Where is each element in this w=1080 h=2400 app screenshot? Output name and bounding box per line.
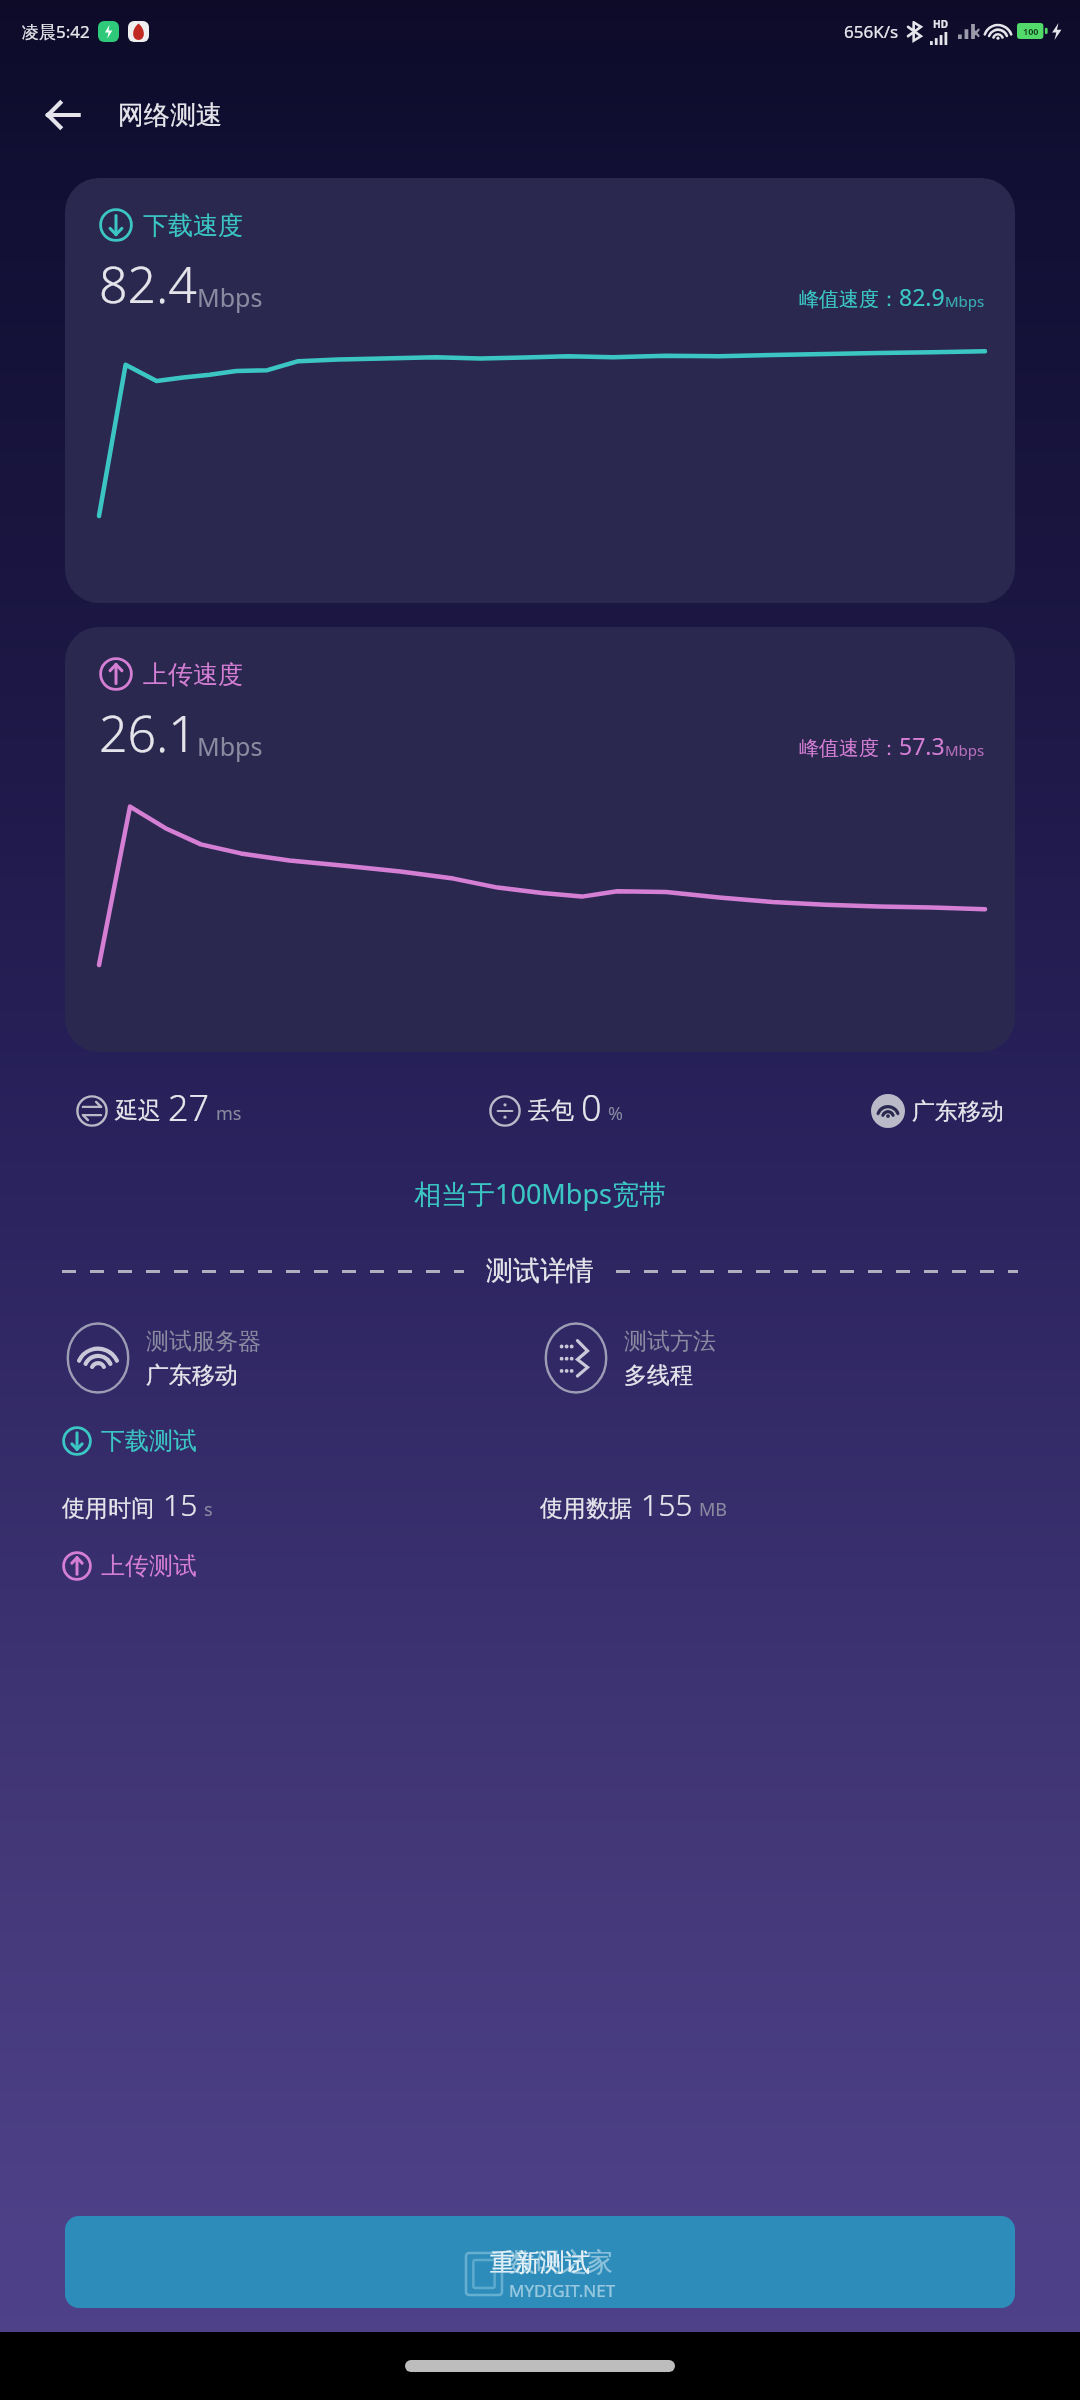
staticText: 测试详情 [486, 1254, 594, 1288]
staticText: 广东移动 [912, 1097, 1004, 1126]
staticText: 0 [581, 1083, 602, 1132]
staticText: 使用数据 [540, 1494, 632, 1523]
button[interactable]: 延迟 [76, 1086, 242, 1135]
staticText: 656K/s [844, 20, 899, 43]
button[interactable]: 上传速度 [65, 627, 1015, 1052]
staticText: 网络测速 [118, 99, 222, 132]
button[interactable]: 测试方法 [540, 1322, 1018, 1394]
staticText: HD [933, 17, 948, 31]
staticText: 27 [168, 1083, 210, 1132]
staticText: % [608, 1101, 623, 1126]
staticText: 100 [1023, 25, 1039, 37]
staticText: 下载速度 [143, 210, 243, 241]
staticText: Mbps [945, 740, 985, 760]
staticText: 82.4 [99, 250, 197, 318]
staticText: 测试服务器 [146, 1327, 261, 1356]
staticText: 使用时间 [62, 1494, 154, 1523]
button[interactable]: 重新测试 [65, 2216, 1015, 2308]
staticText: Mbps [945, 291, 985, 311]
staticText: MYDIGIT.NET [509, 2279, 616, 2302]
button[interactable]: 下载测试 [62, 1426, 1018, 1456]
staticText: 15 [163, 1484, 198, 1525]
staticText: MB [699, 1497, 728, 1522]
staticText: 测试方法 [624, 1327, 716, 1356]
staticText: 上传速度 [143, 659, 243, 690]
button[interactable]: 下载速度 [65, 178, 1015, 603]
staticText: 相当于100Mbps宽带 [0, 1175, 1080, 1212]
button[interactable]: 测试服务器 [62, 1322, 540, 1394]
staticText: 峰值速度： [799, 287, 899, 312]
staticText: 丢包 [528, 1096, 574, 1125]
staticText: 数码之家 [509, 2246, 613, 2279]
staticText: 峰值速度： [799, 736, 899, 761]
staticText: 延迟 [115, 1096, 161, 1125]
staticText: Mbps [197, 729, 263, 763]
staticText: Mbps [197, 280, 263, 314]
staticText: ms [216, 1101, 242, 1126]
button[interactable]: 广东移动 [871, 1094, 1004, 1128]
staticText: s [204, 1497, 213, 1522]
button[interactable]: Back [34, 86, 92, 144]
button[interactable]: 丢包 [489, 1086, 623, 1135]
button[interactable]: 上传测试 [62, 1551, 1018, 1581]
staticText: 155 [641, 1484, 693, 1525]
staticText: 多线程 [624, 1361, 693, 1390]
staticText: 重新测试 [490, 2247, 590, 2278]
staticText: 82.9 [899, 281, 945, 312]
staticText: 广东移动 [146, 1361, 238, 1390]
staticText: 上传测试 [101, 1551, 197, 1581]
staticText: 57.3 [899, 730, 945, 761]
staticText: 26.1 [99, 699, 197, 767]
staticText: 下载测试 [101, 1426, 197, 1456]
staticText: 凌晨5:42 [22, 20, 90, 43]
